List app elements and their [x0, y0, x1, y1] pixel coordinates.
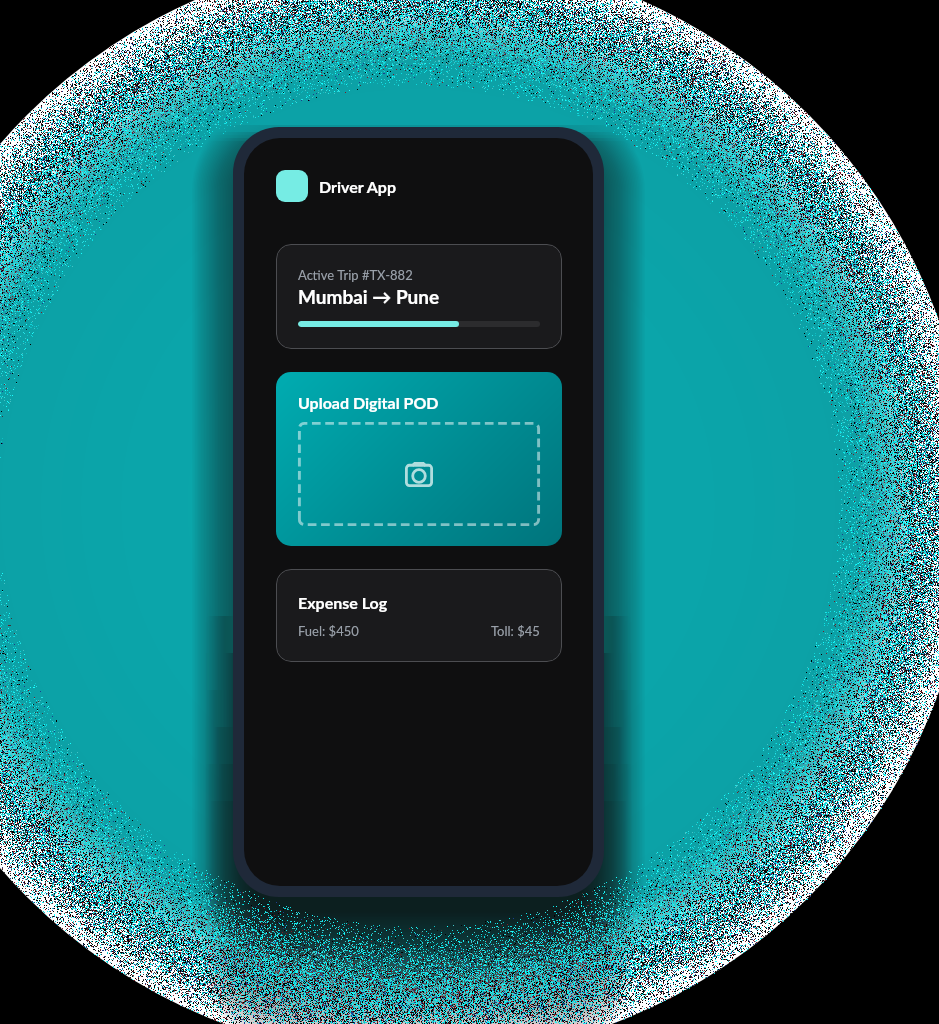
- staticText: Toll: $45: [491, 623, 540, 639]
- staticText: Active Trip #TX-882: [298, 267, 413, 283]
- staticText: Driver App: [319, 177, 397, 196]
- staticText: Upload Digital POD: [298, 393, 439, 412]
- staticText: Expense Log: [298, 593, 388, 612]
- button[interactable]: Expense Log: [276, 569, 562, 662]
- button[interactable]: Upload Digital POD: [276, 372, 562, 546]
- button[interactable]: Driver App: [276, 170, 397, 202]
- other: Upload photo: [405, 462, 433, 487]
- staticText: Fuel: $450: [298, 623, 359, 639]
- button[interactable]: Active Trip #TX-882: [276, 244, 562, 349]
- staticText: Mumbai → Pune: [298, 285, 440, 308]
